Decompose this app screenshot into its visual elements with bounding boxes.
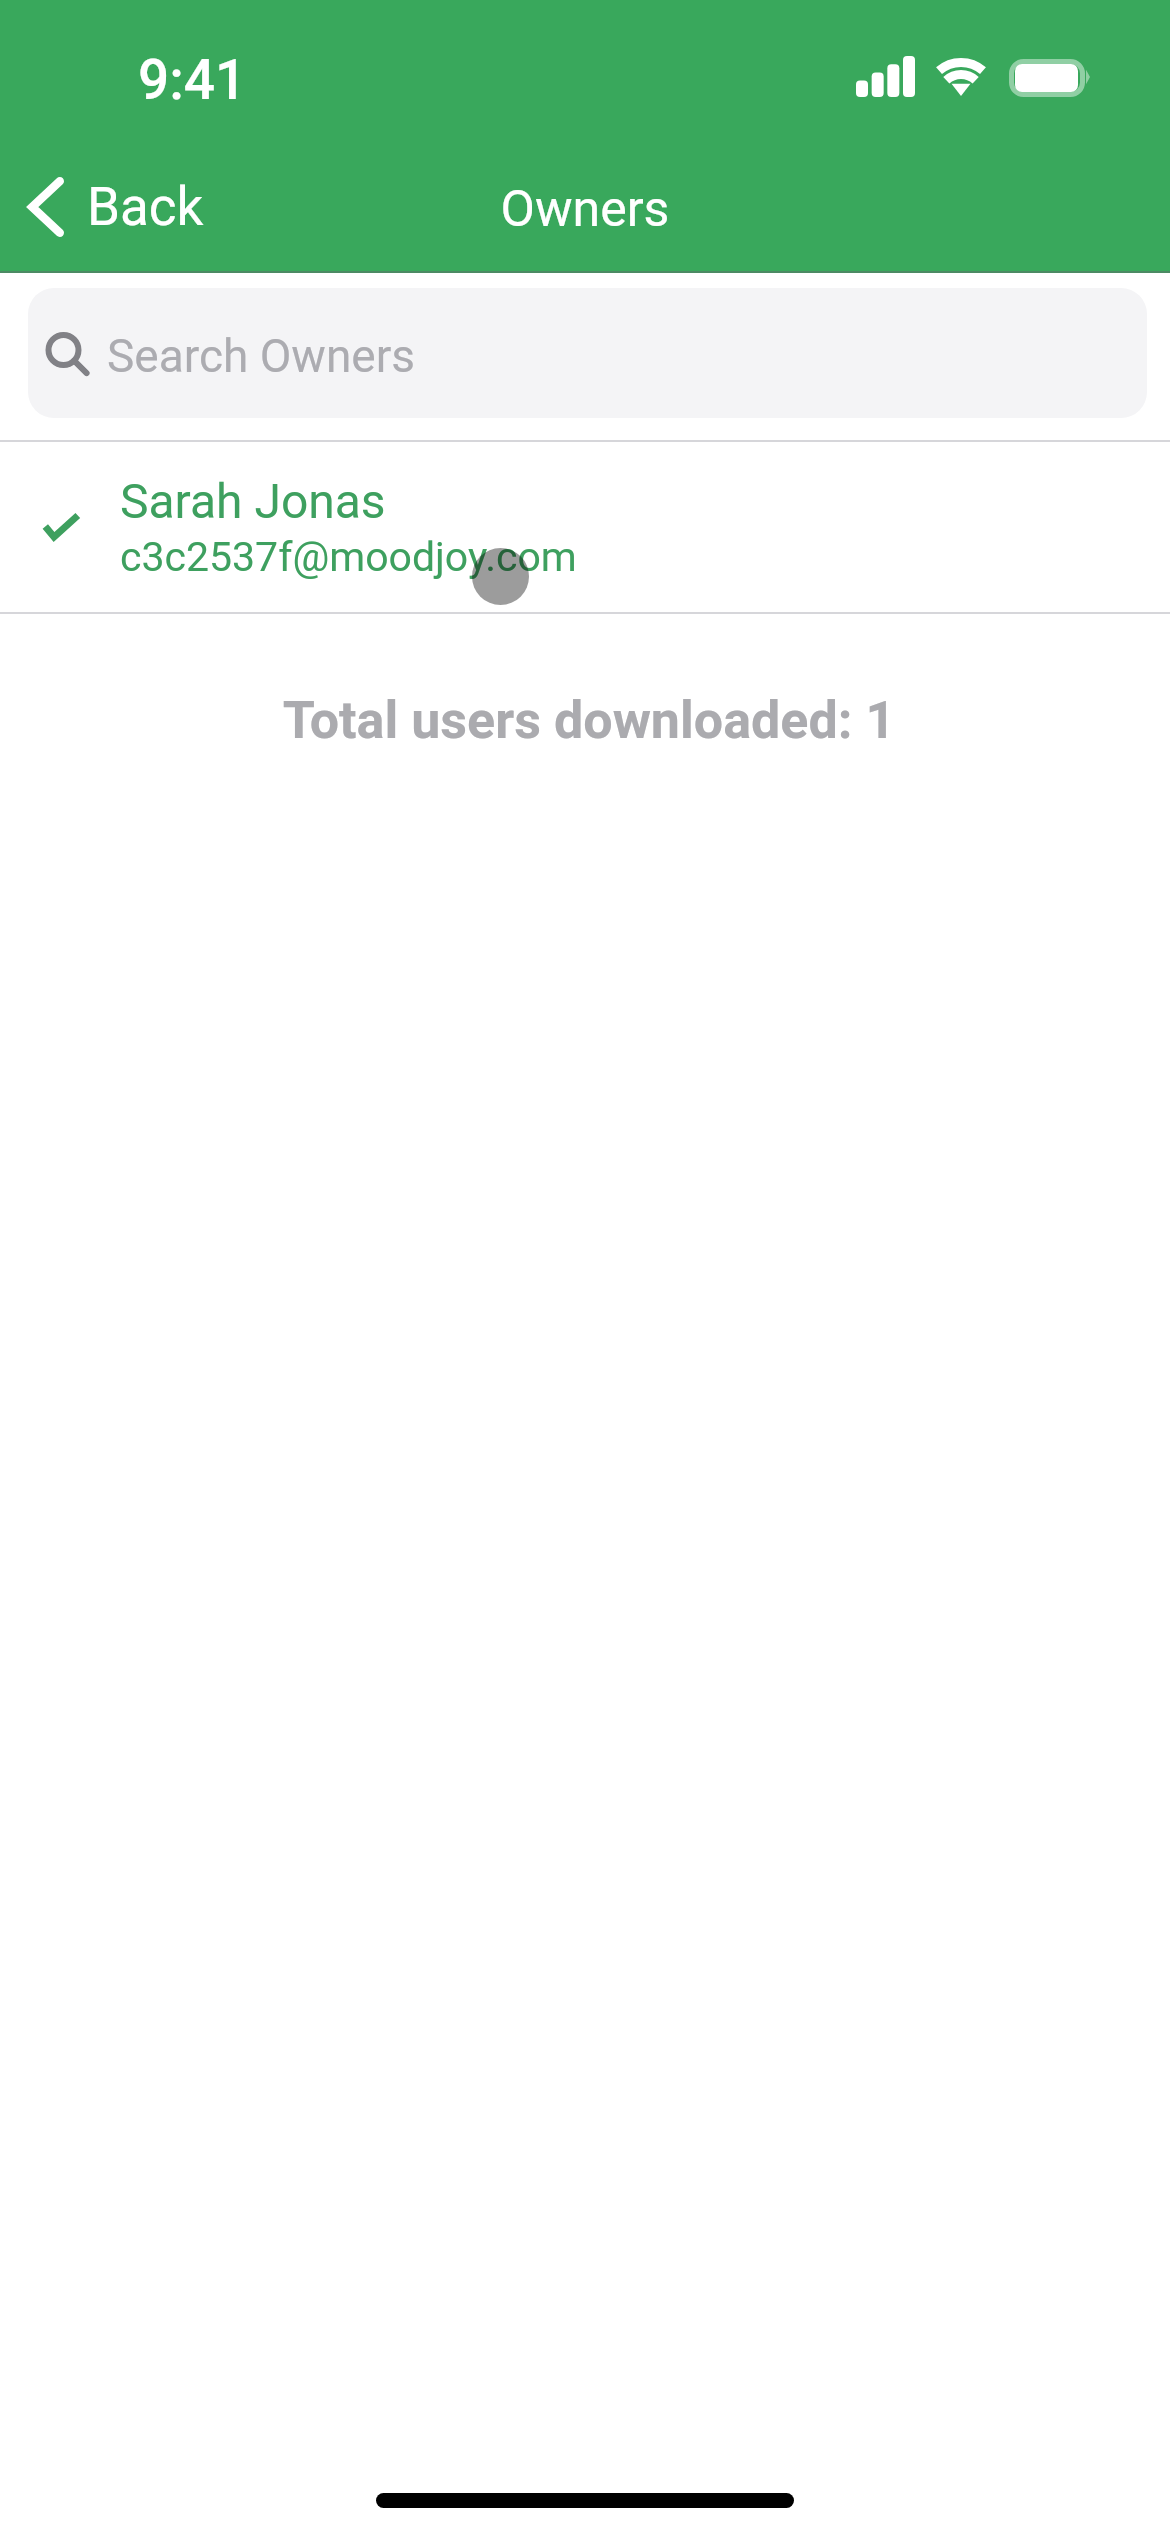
staticText: c3c2537f@moodjoy.com [120, 533, 577, 581]
staticText: Owners [0, 180, 1170, 239]
staticText: Back [87, 176, 204, 238]
button[interactable]: Sarah Jonas [0, 442, 1170, 612]
button[interactable]: Back [8, 166, 222, 248]
staticText: Total users downloaded: 1 [4, 690, 1170, 751]
staticText: 9:41 [138, 48, 247, 112]
other: Wi-Fi connected [934, 55, 988, 96]
staticText: Search Owners [107, 329, 416, 383]
staticText: Sarah Jonas [120, 473, 386, 529]
other: Cellular signal strength [856, 56, 915, 97]
other: Battery full [1008, 56, 1094, 98]
button[interactable]: Search Owners [28, 288, 1147, 418]
